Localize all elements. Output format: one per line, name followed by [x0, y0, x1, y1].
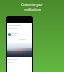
staticText: notifications: [24, 8, 41, 12]
staticText: Customize your: [21, 3, 43, 7]
